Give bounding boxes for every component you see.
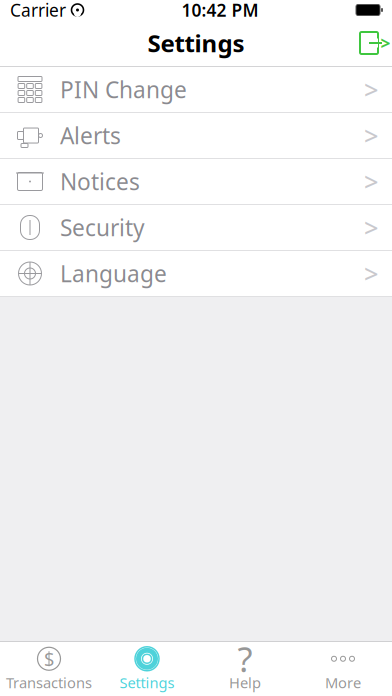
staticText: Help <box>229 673 261 692</box>
button[interactable]: Security <box>0 205 392 251</box>
staticText: Alerts <box>60 120 121 150</box>
staticText: Transactions <box>6 673 92 692</box>
staticText: Language <box>60 258 167 288</box>
button[interactable]: S <box>0 643 98 695</box>
button[interactable]: Log out <box>346 21 392 65</box>
button[interactable]: Language <box>0 251 392 297</box>
staticText: Settings <box>119 673 174 692</box>
staticText: PIN Change <box>60 74 187 104</box>
staticText: Settings <box>147 27 244 59</box>
staticText: Notices <box>60 166 140 196</box>
button[interactable]: Notices <box>0 159 392 205</box>
button[interactable]: Settings <box>98 643 196 695</box>
staticText: More <box>325 673 361 692</box>
staticText: > <box>364 165 378 198</box>
staticText: S <box>44 646 54 671</box>
staticText: > <box>364 257 378 290</box>
button[interactable]: Alerts <box>0 113 392 159</box>
staticText: ? <box>237 636 252 682</box>
staticText: 10:42 PM <box>181 0 258 21</box>
button[interactable]: PIN Change <box>0 67 392 113</box>
staticText: Security <box>60 212 145 242</box>
staticText: > <box>364 211 378 244</box>
button[interactable]: More <box>294 643 392 695</box>
staticText: > <box>364 73 378 106</box>
staticText: > <box>364 119 378 152</box>
staticText: > <box>380 31 390 54</box>
button[interactable]: ? <box>196 643 294 695</box>
staticText: Carrier <box>10 0 66 21</box>
